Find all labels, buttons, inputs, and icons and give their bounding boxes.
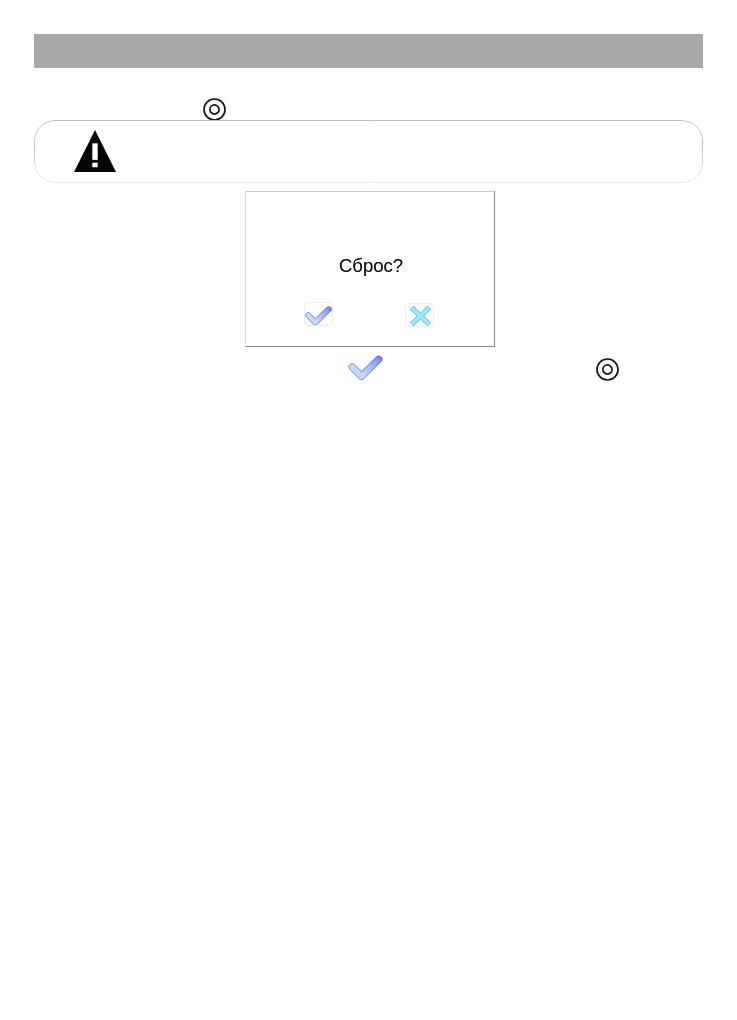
staticText: Сброс?: [246, 255, 496, 276]
button[interactable]: Apply: [348, 355, 383, 381]
button[interactable]: Select option 2: [596, 358, 619, 381]
button[interactable]: Cancel reset: [405, 303, 434, 327]
button[interactable]: Select option: [203, 98, 226, 121]
button[interactable]: Confirm reset: [304, 302, 333, 326]
staticText: Сброс?: [246, 255, 496, 276]
